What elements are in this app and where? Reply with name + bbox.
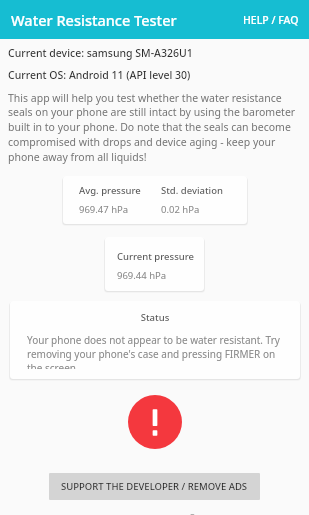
staticText: Status: [27, 311, 283, 324]
staticText: This app will help you test whether the …: [8, 91, 301, 164]
staticText: 0.02 hPa: [161, 203, 200, 216]
staticText: HELP / FAQ: [243, 13, 299, 27]
staticText: Current OS: Android 11 (API level 30): [8, 68, 191, 82]
button[interactable]: SUPPORT THE DEVELOPER / REMOVE ADS: [49, 473, 260, 500]
staticText: Current device: samsung SM-A326U1: [8, 46, 193, 60]
staticText: Avg. pressure: [79, 184, 141, 197]
staticText: 969.47 hPa: [79, 203, 129, 216]
button[interactable]: Current pressure: [105, 237, 204, 291]
staticText: Your phone does not appear to be water r…: [27, 333, 283, 369]
button[interactable]: Status: [10, 301, 300, 379]
button[interactable]: Avg. pressure: [63, 176, 247, 224]
staticText: Std. deviation: [161, 184, 223, 197]
other: Not water resistant alert: [128, 395, 182, 449]
staticText: Water Resistance Tester: [11, 10, 177, 30]
staticText: Copyright © 2021 Raymond Wang: [0, 512, 299, 515]
staticText: SUPPORT THE DEVELOPER / REMOVE ADS: [61, 480, 248, 493]
button[interactable]: HELP / FAQ: [233, 5, 309, 35]
staticText: Current pressure: [117, 250, 194, 263]
staticText: 969.44 hPa: [117, 269, 167, 282]
